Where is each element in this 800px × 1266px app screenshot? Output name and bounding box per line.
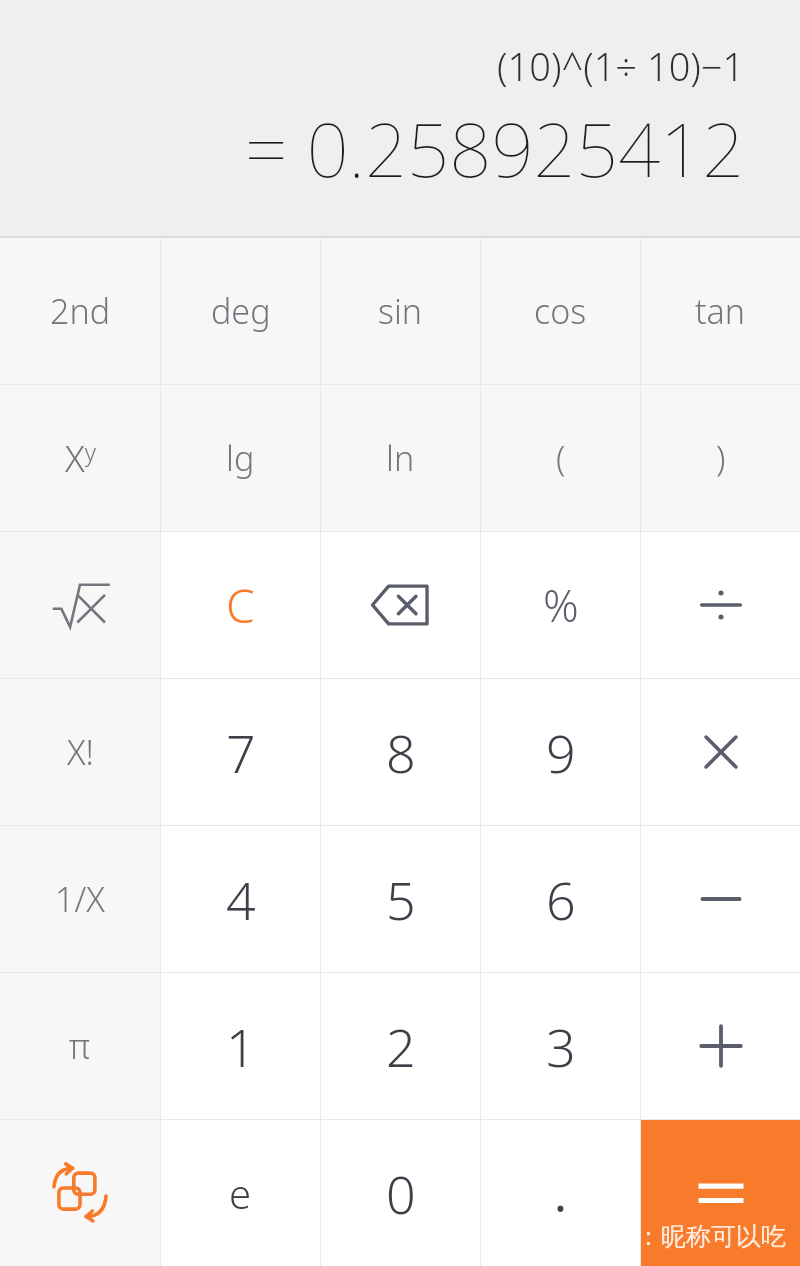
button[interactable]: 2nd: [0, 238, 160, 384]
staticText: C: [226, 574, 255, 637]
staticText: π: [69, 1023, 91, 1069]
staticText: X!: [67, 729, 94, 775]
staticText: 2: [386, 1011, 416, 1082]
button[interactable]: Convert units: [0, 1120, 160, 1266]
button[interactable]: lg: [161, 385, 320, 531]
button[interactable]: X!: [0, 679, 160, 825]
staticText: 8: [386, 717, 416, 788]
staticText: ln: [386, 435, 415, 481]
button[interactable]: 5: [321, 826, 480, 972]
staticText: (10)^(1÷ 10)−1: [497, 40, 745, 92]
button[interactable]: Plus: [641, 973, 800, 1119]
staticText: .: [554, 1161, 567, 1226]
button[interactable]: ): [641, 385, 800, 531]
staticText: 2nd: [50, 288, 111, 334]
button[interactable]: Clear: [161, 532, 320, 678]
button[interactable]: deg: [161, 238, 320, 384]
button[interactable]: π: [0, 973, 160, 1119]
button[interactable]: cos: [481, 238, 640, 384]
staticText: sin: [378, 288, 423, 334]
staticText: 9: [546, 717, 576, 788]
staticText: 6: [546, 864, 576, 935]
button[interactable]: Equals: [641, 1120, 800, 1266]
staticText: cos: [534, 288, 587, 334]
button[interactable]: 4: [161, 826, 320, 972]
button[interactable]: Square root: [0, 532, 160, 678]
staticText: (: [556, 435, 566, 481]
button[interactable]: tan: [641, 238, 800, 384]
button[interactable]: 7: [161, 679, 320, 825]
staticText: ): [716, 435, 726, 481]
staticText: %: [543, 575, 579, 635]
staticText: 5: [386, 864, 416, 935]
staticText: 4: [226, 864, 256, 935]
staticText: lg: [226, 435, 255, 481]
staticText: 1/X: [55, 876, 105, 922]
button[interactable]: (: [481, 385, 640, 531]
button[interactable]: .: [481, 1120, 640, 1266]
button[interactable]: 2: [321, 973, 480, 1119]
button[interactable]: %: [481, 532, 640, 678]
button[interactable]: Xy: [0, 385, 160, 531]
button[interactable]: Multiply: [641, 679, 800, 825]
staticText: deg: [211, 288, 271, 334]
button[interactable]: Divide: [641, 532, 800, 678]
staticText: 7: [226, 717, 256, 788]
staticText: 雪球：昵称可以吃: [586, 1221, 786, 1252]
staticText: 1: [226, 1011, 256, 1082]
button[interactable]: 6: [481, 826, 640, 972]
button[interactable]: Minus: [641, 826, 800, 972]
button[interactable]: sin: [321, 238, 480, 384]
button[interactable]: e: [161, 1120, 320, 1266]
staticText: 0: [386, 1158, 416, 1229]
staticText: 3: [546, 1011, 576, 1082]
staticText: Xy: [65, 434, 96, 483]
button[interactable]: 1: [161, 973, 320, 1119]
staticText: e: [229, 1166, 252, 1220]
staticText: tan: [695, 288, 746, 334]
staticText: = 0.258925412: [245, 98, 745, 199]
button[interactable]: 1/X: [0, 826, 160, 972]
button[interactable]: 9: [481, 679, 640, 825]
button[interactable]: Backspace: [321, 532, 480, 678]
button[interactable]: 3: [481, 973, 640, 1119]
button[interactable]: 8: [321, 679, 480, 825]
button[interactable]: 0: [321, 1120, 480, 1266]
button[interactable]: ln: [321, 385, 480, 531]
